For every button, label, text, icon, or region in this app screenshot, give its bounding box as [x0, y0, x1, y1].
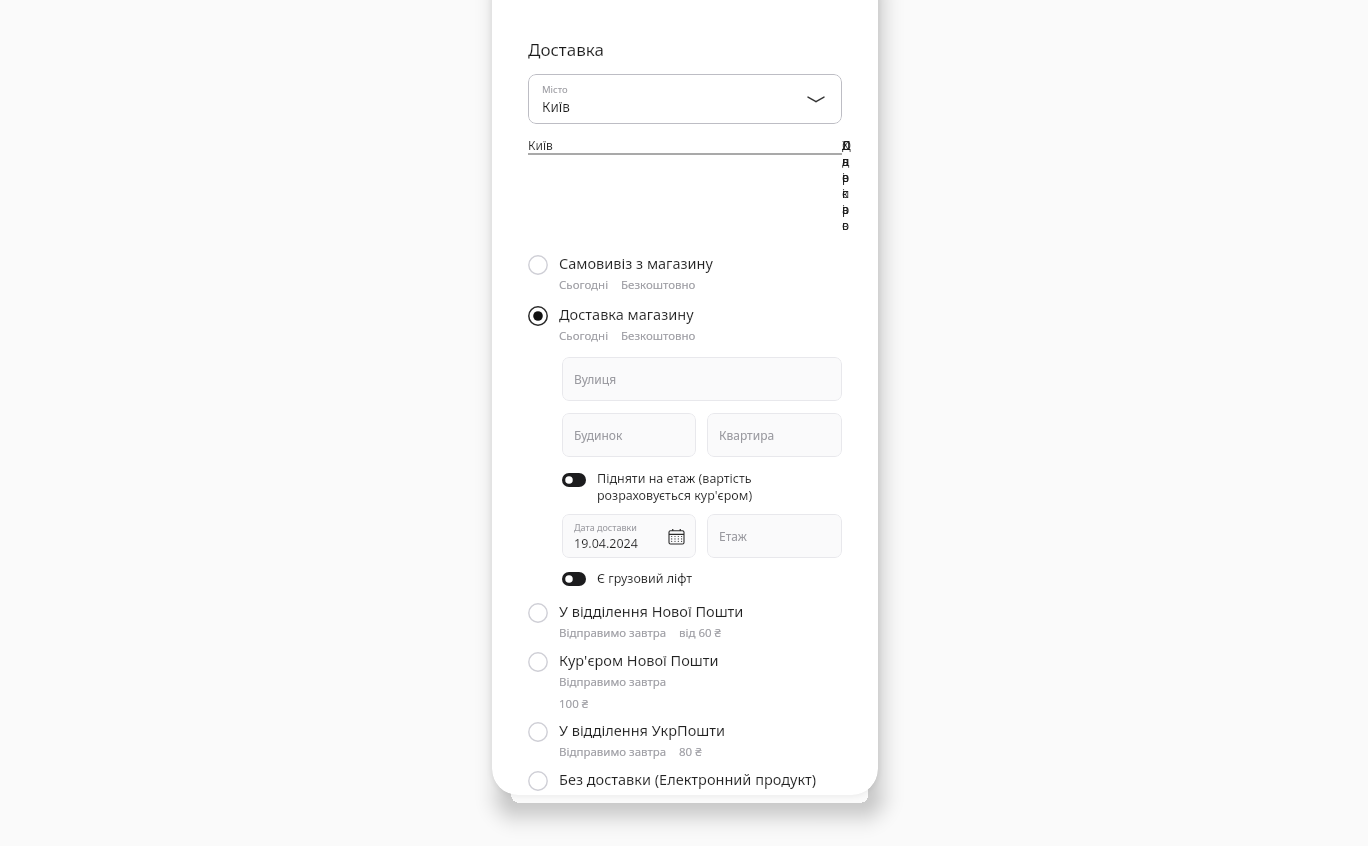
staticText: Підняти на етаж (вартість: [597, 470, 752, 487]
button[interactable]: Toggle: [562, 572, 586, 586]
staticText: Доставка: [528, 38, 604, 61]
other: Pick date: [669, 529, 684, 544]
staticText: Доставка магазину: [559, 304, 694, 324]
staticText: Є грузовий ліфт: [597, 570, 693, 587]
staticText: Етаж: [719, 528, 747, 544]
button[interactable]: Місто: [528, 74, 842, 124]
staticText: Київ: [542, 98, 570, 116]
staticText: Самовивіз з магазину: [559, 253, 713, 273]
staticText: Відправимо завтра: [559, 744, 667, 760]
staticText: Квартира: [719, 427, 775, 443]
button[interactable]: Доставка магазину: [528, 304, 842, 344]
button[interactable]: Без доставки (Електронний продукт): [528, 769, 842, 795]
button[interactable]: Toggle: [562, 570, 693, 587]
staticText: Дата доставки: [574, 521, 637, 533]
staticText: У відділення УкрПошти: [559, 720, 725, 740]
staticText: від 60 ₴: [679, 625, 721, 641]
button[interactable]: Київ: [528, 137, 842, 155]
staticText: 100 ₴: [559, 696, 589, 712]
staticText: Сьогодні: [559, 277, 609, 293]
button[interactable]: Кур'єром Нової Пошти: [528, 650, 842, 712]
staticText: Вулиця: [574, 371, 617, 387]
button[interactable]: Будинок: [562, 413, 696, 457]
button[interactable]: Toggle: [562, 470, 753, 504]
button[interactable]: У відділення Нової Пошти: [528, 601, 842, 641]
staticText: 80 ₴: [679, 744, 702, 760]
staticText: Кур'єром Нової Пошти: [559, 650, 719, 670]
button[interactable]: Самовивіз з магазину: [528, 253, 842, 293]
staticText: Місто: [542, 83, 568, 96]
button[interactable]: У відділення УкрПошти: [528, 720, 842, 760]
staticText: Сьогодні: [559, 328, 609, 344]
button[interactable]: Дата доставки: [562, 514, 696, 558]
staticText: Відправимо завтра: [559, 625, 667, 641]
staticText: Безкоштовно: [621, 328, 696, 344]
staticText: Київ: [528, 137, 553, 153]
staticText: Відправимо завтра: [559, 674, 667, 690]
button[interactable]: Етаж: [707, 514, 842, 558]
staticText: Без доставки (Електронний продукт): [559, 769, 817, 789]
staticText: Будинок: [574, 427, 623, 443]
staticText: розраховується кур'єром): [597, 487, 753, 504]
staticText: 19.04.2024: [574, 535, 638, 552]
staticText: Безкоштовно: [621, 277, 696, 293]
button[interactable]: Toggle: [562, 473, 586, 487]
button[interactable]: Вулиця: [562, 357, 842, 401]
staticText: У відділення Нової Пошти: [559, 601, 744, 621]
button[interactable]: Квартира: [707, 413, 842, 457]
